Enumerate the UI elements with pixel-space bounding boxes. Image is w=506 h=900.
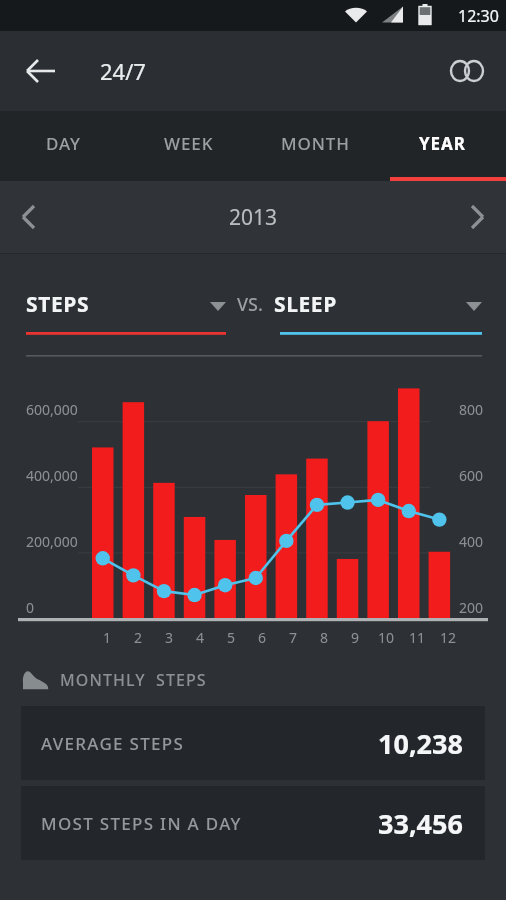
staticText: STEPS bbox=[26, 290, 90, 319]
staticText: 0 bbox=[26, 598, 35, 617]
staticText: 10 bbox=[378, 628, 395, 647]
staticText: MONTH bbox=[281, 132, 350, 155]
staticText: 7 bbox=[289, 628, 298, 647]
staticText: 1 bbox=[103, 628, 112, 647]
staticText: 600,000 bbox=[26, 400, 78, 419]
staticText: 11 bbox=[409, 628, 426, 647]
staticText: DAY bbox=[46, 132, 81, 155]
staticText: 600 bbox=[459, 466, 484, 485]
staticText: 3 bbox=[165, 628, 174, 647]
button[interactable]: DAY bbox=[0, 111, 126, 181]
staticText: 24/7 bbox=[100, 56, 146, 86]
staticText: MOST STEPS IN A DAY bbox=[41, 812, 242, 835]
staticText: 10,238 bbox=[378, 725, 463, 762]
staticText: 4 bbox=[196, 628, 205, 647]
button[interactable]: YEAR bbox=[379, 111, 506, 181]
staticText: 200 bbox=[459, 598, 484, 617]
staticText: 33,456 bbox=[378, 805, 463, 842]
button[interactable]: AVERAGE STEPS bbox=[21, 706, 485, 780]
button[interactable]: WEEK bbox=[126, 111, 252, 181]
staticText: 9 bbox=[351, 628, 360, 647]
staticText: 800 bbox=[459, 400, 484, 419]
staticText: SLEEP bbox=[274, 290, 337, 319]
staticText: 8 bbox=[320, 628, 329, 647]
button[interactable]: Link accounts bbox=[442, 46, 492, 96]
staticText: WEEK bbox=[164, 132, 214, 155]
staticText: 6 bbox=[258, 628, 267, 647]
button[interactable]: Back bbox=[16, 46, 66, 96]
button[interactable]: MOST STEPS IN A DAY bbox=[21, 786, 485, 860]
staticText: 2013 bbox=[229, 203, 278, 232]
staticText: MONTHLY bbox=[60, 669, 146, 691]
staticText: 400,000 bbox=[26, 466, 78, 485]
button[interactable]: SLEEP bbox=[274, 290, 482, 319]
staticText: YEAR bbox=[419, 132, 466, 155]
staticText: 2 bbox=[134, 628, 143, 647]
staticText: VS. bbox=[237, 292, 263, 317]
staticText: 200,000 bbox=[26, 532, 78, 551]
button[interactable]: Previous year bbox=[0, 189, 56, 245]
staticText: AVERAGE STEPS bbox=[41, 732, 185, 755]
button[interactable]: STEPS bbox=[26, 290, 226, 319]
button[interactable]: MONTH bbox=[252, 111, 379, 181]
staticText: 5 bbox=[227, 628, 236, 647]
button[interactable]: Next year bbox=[450, 189, 506, 245]
staticText: 12:30 bbox=[458, 5, 499, 27]
staticText: 12 bbox=[440, 628, 457, 647]
staticText: STEPS bbox=[156, 669, 207, 691]
staticText: 400 bbox=[459, 532, 484, 551]
